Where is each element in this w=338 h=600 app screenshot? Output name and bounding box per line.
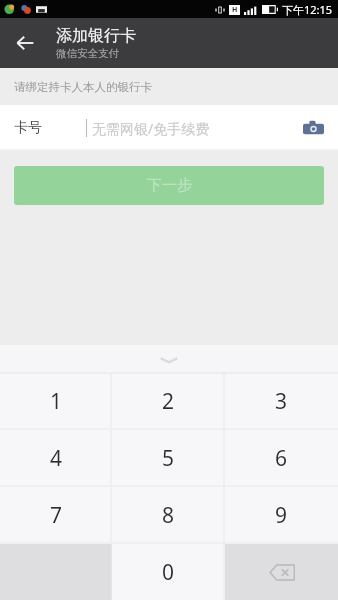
button[interactable]: 7 [0,487,112,543]
staticText: H [232,5,238,15]
button[interactable]: Backspace [225,544,338,600]
staticText: 6 [275,444,288,473]
button[interactable]: 2 [112,374,225,429]
staticText: 下午12:15 [282,2,333,17]
button[interactable]: 5 [112,430,225,486]
staticText: 1 [50,387,63,416]
button[interactable]: 1 [0,374,112,429]
staticText: 5 [162,444,175,473]
staticText: 0 [162,558,175,587]
button[interactable]: 8 [112,487,225,543]
button[interactable]: Scan card [300,115,326,141]
button[interactable]: 卡号 [0,105,338,151]
staticText: 微信安全支付 [56,47,119,60]
staticText: 无需网银/免手续费 [92,119,300,138]
button[interactable]: 下一步 [14,166,324,205]
button[interactable]: 0 [112,544,225,600]
staticText: 2 [162,387,175,416]
staticText: 9 [275,501,288,530]
button[interactable]: 6 [225,430,338,486]
staticText: 4 [50,444,63,473]
staticText: 添加银行卡 [56,26,136,46]
button[interactable]: 3 [225,374,338,429]
staticText: 请绑定持卡人本人的银行卡 [14,80,152,94]
button[interactable]: Back [0,18,50,68]
button[interactable]: 4 [0,430,112,486]
staticText: 7 [50,501,63,530]
staticText: 8 [162,501,175,530]
button[interactable]: 9 [225,487,338,543]
staticText: 下一步 [147,176,192,195]
staticText: 3 [275,387,288,416]
staticText: 卡号 [14,119,42,137]
